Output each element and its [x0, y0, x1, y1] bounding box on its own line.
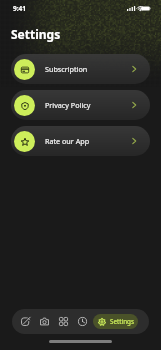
- button[interactable]: Edit: [16, 312, 35, 331]
- button[interactable]: History: [73, 312, 92, 331]
- button[interactable]: Settings: [93, 314, 138, 329]
- button[interactable]: Camera: [35, 312, 54, 331]
- staticText: Rate our App: [45, 136, 90, 146]
- button[interactable]: Rate our App: [11, 126, 150, 156]
- button[interactable]: Apps: [54, 312, 73, 331]
- staticText: 9:41: [13, 4, 26, 13]
- staticText: Privacy Policy: [45, 100, 91, 110]
- staticText: Settings: [11, 26, 61, 42]
- button[interactable]: Subscription: [11, 54, 150, 84]
- staticText: Settings: [110, 317, 134, 326]
- staticText: Subscription: [45, 64, 88, 74]
- button[interactable]: Privacy Policy: [11, 90, 150, 120]
